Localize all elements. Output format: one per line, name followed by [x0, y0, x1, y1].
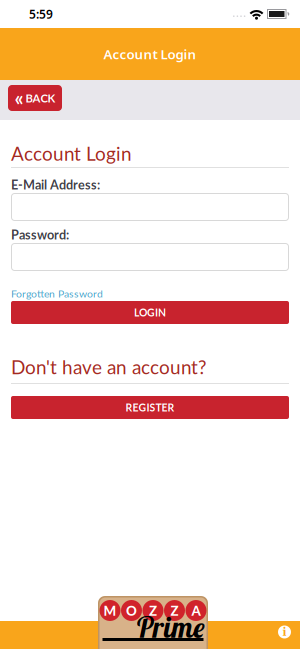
- staticText: O: [126, 602, 137, 618]
- button[interactable]: Forgotten Password: [11, 287, 103, 300]
- staticText: Don't have an account?: [11, 356, 206, 378]
- staticText: REGISTER: [125, 401, 174, 414]
- staticText: A: [191, 602, 200, 618]
- staticText: Account Login: [11, 142, 132, 165]
- staticText: Account Login: [103, 45, 196, 63]
- staticText: Forgotten Password: [11, 287, 103, 300]
- staticText: 5:59: [29, 6, 53, 22]
- button[interactable]: LOGIN: [11, 301, 289, 324]
- button[interactable]: Back: [8, 85, 62, 111]
- staticText: Password:: [11, 227, 69, 242]
- staticText: M: [103, 602, 116, 618]
- staticText: Z: [149, 602, 157, 618]
- staticText: E-Mail Address:: [11, 177, 100, 192]
- staticText: BACK: [25, 91, 55, 105]
- staticText: Prime: [135, 609, 204, 645]
- staticText: Z: [170, 602, 178, 618]
- button[interactable]: Info: [278, 625, 291, 638]
- staticText: «: [14, 86, 23, 110]
- button[interactable]: REGISTER: [11, 396, 289, 419]
- staticText: i: [282, 626, 286, 638]
- staticText: LOGIN: [134, 306, 166, 319]
